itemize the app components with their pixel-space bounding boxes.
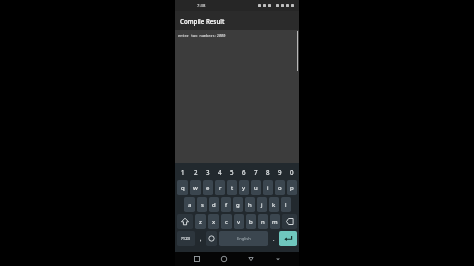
button[interactable]: 0 — [286, 165, 298, 179]
staticText: 5 — [230, 168, 234, 176]
staticText: w — [193, 184, 198, 192]
staticText: i — [267, 184, 269, 192]
staticText: 6 — [242, 168, 246, 176]
button[interactable]: 4 — [214, 165, 226, 179]
button[interactable]: Backspace — [282, 214, 297, 229]
staticText: 4 — [218, 168, 222, 176]
button[interactable]: c — [221, 214, 232, 229]
button[interactable]: k — [269, 197, 279, 212]
button[interactable]: Comma — [197, 231, 204, 246]
button[interactable]: m — [270, 214, 280, 229]
button[interactable]: Period — [270, 231, 277, 246]
button[interactable]: i — [263, 180, 273, 195]
staticText: d — [212, 201, 216, 209]
staticText: q — [181, 184, 185, 192]
button[interactable]: Recents — [191, 253, 203, 265]
button[interactable]: l — [281, 197, 291, 212]
staticText: f — [225, 201, 228, 209]
staticText: x — [212, 218, 216, 226]
staticText: s — [201, 201, 204, 209]
staticText: b — [249, 218, 253, 226]
staticText: c — [225, 218, 228, 226]
button[interactable]: a — [184, 197, 195, 212]
button[interactable]: Change language — [206, 231, 217, 246]
button[interactable]: r — [215, 180, 225, 195]
staticText: m — [272, 218, 278, 226]
staticText: j — [261, 201, 263, 209]
button[interactable]: x — [208, 214, 219, 229]
button[interactable]: 7 — [250, 165, 262, 179]
staticText: p — [290, 184, 294, 192]
staticText: u — [254, 184, 258, 192]
staticText: 2 — [194, 168, 198, 176]
staticText: 9 — [278, 168, 282, 176]
button[interactable]: b — [246, 214, 256, 229]
button[interactable]: d — [209, 197, 219, 212]
button[interactable]: q — [177, 180, 188, 195]
staticText: 3 — [206, 168, 210, 176]
button[interactable]: h — [245, 197, 255, 212]
button[interactable]: 1 — [176, 165, 189, 179]
staticText: 7 — [254, 168, 258, 176]
button[interactable]: Hide keyboard — [272, 253, 284, 265]
staticText: n — [261, 218, 265, 226]
staticText: v — [237, 218, 241, 226]
button[interactable]: p — [287, 180, 297, 195]
button[interactable]: n — [258, 214, 268, 229]
button[interactable]: English — [219, 231, 268, 246]
button[interactable]: ?123 — [177, 231, 195, 246]
staticText: o — [278, 184, 282, 192]
button[interactable]: v — [234, 214, 244, 229]
button[interactable]: z — [195, 214, 206, 229]
staticText: r — [219, 184, 222, 192]
staticText: 1 — [181, 168, 185, 176]
button[interactable]: e — [203, 180, 213, 195]
button[interactable]: 3 — [202, 165, 214, 179]
staticText: z — [199, 218, 202, 226]
staticText: h — [248, 201, 252, 209]
button[interactable]: g — [233, 197, 243, 212]
staticText: 7:38 — [197, 3, 206, 9]
staticText: . — [273, 235, 275, 242]
button[interactable]: j — [257, 197, 267, 212]
staticText: t — [231, 184, 234, 192]
staticText: enter two numbers:2000 — [178, 33, 226, 38]
button[interactable]: s — [197, 197, 207, 212]
staticText: g — [236, 201, 240, 209]
button[interactable]: u — [251, 180, 261, 195]
staticText: ?123 — [181, 236, 191, 242]
button[interactable]: f — [221, 197, 231, 212]
button[interactable]: 9 — [274, 165, 286, 179]
button[interactable]: w — [190, 180, 201, 195]
button[interactable]: Shift — [177, 214, 193, 229]
staticText: 8 — [266, 168, 270, 176]
staticText: l — [285, 201, 287, 209]
staticText: English — [237, 236, 251, 241]
staticText: a — [188, 201, 192, 209]
staticText: Compile Result — [180, 17, 225, 25]
button[interactable]: 2 — [189, 165, 202, 179]
button[interactable]: o — [275, 180, 285, 195]
button[interactable]: 6 — [238, 165, 250, 179]
staticText: , — [200, 235, 202, 242]
button[interactable]: Home — [218, 253, 230, 265]
staticText: e — [206, 184, 210, 192]
button[interactable]: 8 — [262, 165, 274, 179]
staticText: 0 — [290, 168, 294, 176]
button[interactable]: 5 — [226, 165, 238, 179]
button[interactable]: y — [239, 180, 249, 195]
staticText: k — [272, 201, 276, 209]
button[interactable]: Enter — [279, 231, 297, 246]
button[interactable]: t — [227, 180, 237, 195]
staticText: y — [242, 184, 246, 192]
button[interactable]: Back — [245, 253, 257, 265]
